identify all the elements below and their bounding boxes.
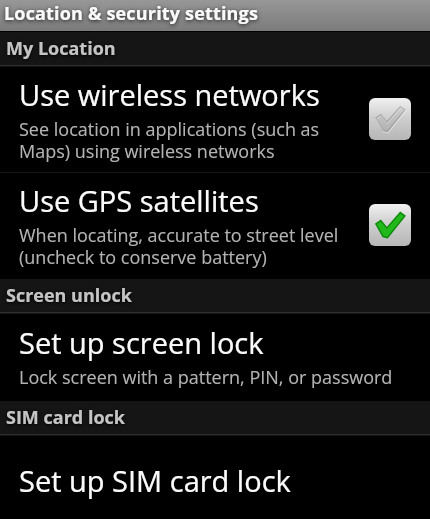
staticText: My Location [6, 36, 116, 61]
staticText: SIM card lock [6, 405, 125, 430]
staticText: Location & security settings [4, 1, 259, 26]
button[interactable]: Use GPS satellites, checked [369, 204, 411, 246]
button[interactable]: Set up SIM card lock [0, 436, 430, 519]
button[interactable]: Use wireless networks [0, 67, 430, 173]
button[interactable]: Use wireless networks, not checked [369, 98, 411, 140]
staticText: Lock screen with a pattern, PIN, or pass… [19, 365, 393, 390]
staticText: Set up SIM card lock [19, 461, 291, 500]
button[interactable]: Use GPS satellites [0, 173, 430, 279]
button[interactable]: Set up screen lock [0, 314, 430, 401]
staticText: Set up screen lock [19, 323, 264, 362]
staticText: Screen unlock [6, 283, 132, 308]
staticText: Use wireless networks [19, 75, 320, 114]
staticText: See location in applications (such as Ma… [19, 117, 349, 164]
staticText: Use GPS satellites [19, 181, 259, 220]
staticText: When locating, accurate to street level … [19, 223, 349, 270]
